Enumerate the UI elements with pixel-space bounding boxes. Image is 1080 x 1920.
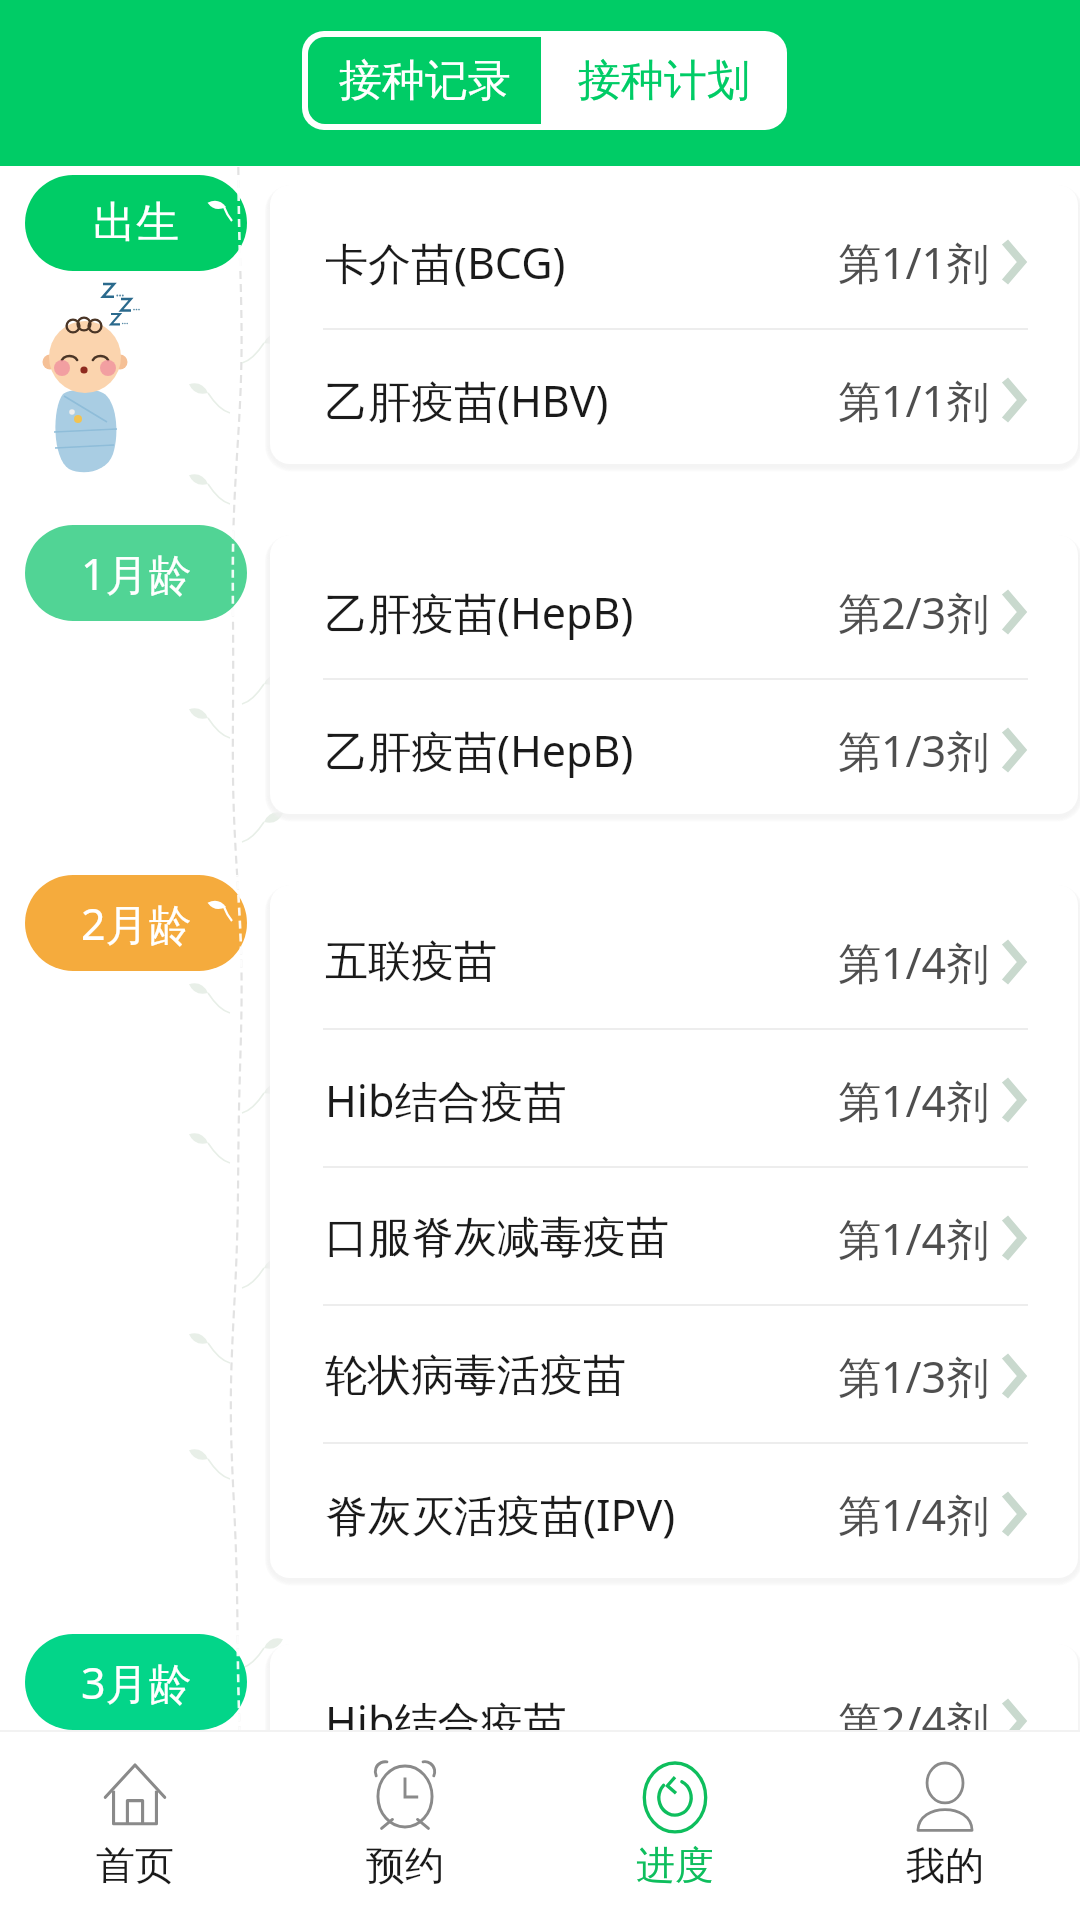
button[interactable]: 乙肝疫苗(HepB) — [270, 540, 1078, 678]
staticText: 第2/3剂 — [838, 583, 990, 642]
staticText: 第1/4剂 — [838, 1485, 990, 1544]
button[interactable]: Hib结合疫苗 — [270, 1649, 1078, 1730]
button[interactable]: 乙肝疫苗(HBV) — [270, 328, 1078, 464]
staticText: 第1/1剂 — [838, 371, 990, 430]
staticText: 轮状病毒活疫苗 — [325, 1349, 626, 1403]
staticText: 乙肝疫苗(HepB) — [325, 721, 634, 780]
button[interactable]: 首页 — [0, 1730, 270, 1920]
button[interactable]: 乙肝疫苗(HepB) — [270, 678, 1078, 814]
staticText: 3月龄 — [81, 1653, 192, 1712]
button[interactable]: 脊灰灭活疫苗(IPV) — [270, 1442, 1078, 1578]
staticText: 出生 — [93, 196, 179, 250]
staticText: 进度 — [636, 1841, 714, 1890]
button[interactable]: Hib结合疫苗 — [270, 1028, 1078, 1166]
staticText: 第2/4剂 — [838, 1692, 990, 1730]
button[interactable]: 我的 — [810, 1730, 1080, 1920]
staticText: 第1/4剂 — [838, 1071, 990, 1130]
button[interactable]: 3月龄 — [25, 1634, 247, 1730]
button[interactable]: 接种计划 — [541, 31, 787, 130]
button[interactable]: 口服脊灰减毒疫苗 — [270, 1166, 1078, 1304]
staticText: 脊灰灭活疫苗(IPV) — [325, 1485, 676, 1544]
button[interactable]: 进度 — [540, 1730, 810, 1920]
staticText: 乙肝疫苗(HBV) — [325, 371, 609, 430]
staticText: 第1/4剂 — [838, 933, 990, 992]
staticText: 第1/3剂 — [838, 721, 990, 780]
staticText: 首页 — [96, 1841, 174, 1890]
button[interactable]: 五联疫苗 — [270, 890, 1078, 1028]
button[interactable]: 出生 — [25, 175, 247, 271]
staticText: Hib结合疫苗 — [325, 1692, 567, 1730]
button[interactable]: 接种记录 — [308, 37, 541, 124]
staticText: 第1/3剂 — [838, 1347, 990, 1406]
staticText: 乙肝疫苗(HepB) — [325, 583, 634, 642]
staticText: 五联疫苗 — [325, 935, 497, 989]
button[interactable]: 2月龄 — [25, 875, 247, 971]
staticText: 我的 — [906, 1841, 984, 1890]
staticText: 2月龄 — [81, 894, 192, 953]
staticText: 预约 — [366, 1841, 444, 1890]
button[interactable]: 卡介苗(BCG) — [270, 190, 1078, 328]
staticText: 接种记录 — [339, 54, 511, 108]
button[interactable]: 预约 — [270, 1730, 540, 1920]
staticText: Hib结合疫苗 — [325, 1071, 567, 1130]
button[interactable]: 1月龄 — [25, 525, 247, 621]
staticText: 卡介苗(BCG) — [325, 233, 566, 292]
staticText: 第1/4剂 — [838, 1209, 990, 1268]
staticText: 第1/1剂 — [838, 233, 990, 292]
staticText: 口服脊灰减毒疫苗 — [325, 1211, 669, 1265]
staticText: 1月龄 — [81, 544, 192, 603]
staticText: 接种计划 — [578, 54, 750, 108]
button[interactable]: 轮状病毒活疫苗 — [270, 1304, 1078, 1442]
